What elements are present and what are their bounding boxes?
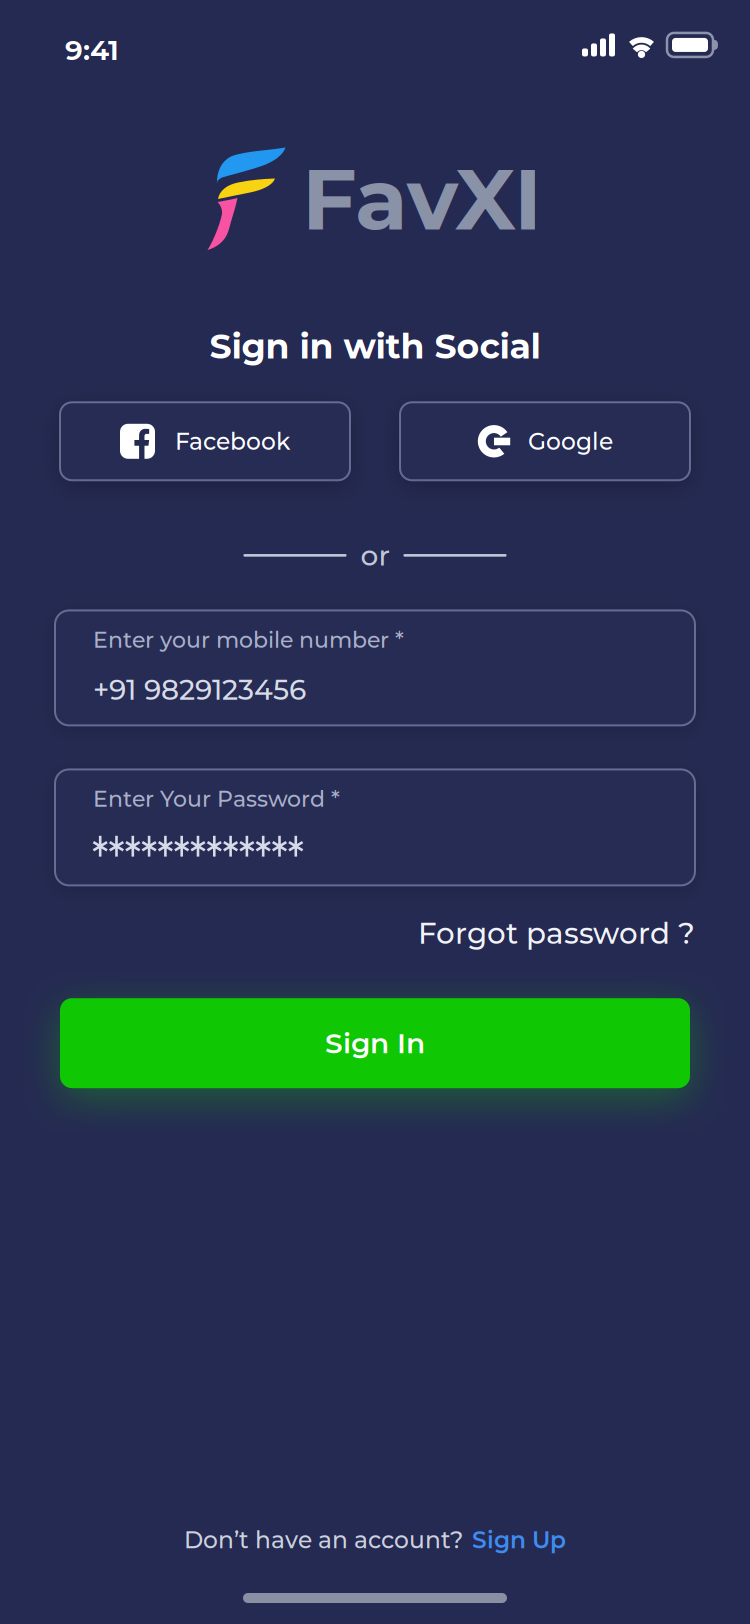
staticText: Don’t have an account? [184,1526,463,1554]
staticText: or [360,538,389,572]
staticText: Forgot password ? [418,915,695,951]
staticText: Sign Up [472,1526,566,1554]
staticText: 9:41 [65,33,119,67]
button[interactable]: Google [400,402,690,480]
staticText: Enter Your Password * [93,785,340,812]
button[interactable]: Forgot password ? [418,915,695,951]
button[interactable]: Sign Up [472,1526,566,1554]
staticText: Facebook [175,427,290,455]
button[interactable]: Enter your mobile number * [55,610,695,725]
staticText: Sign in with Social [209,325,540,367]
staticText: FavXI [302,147,542,251]
staticText: Enter your mobile number * [93,626,404,653]
staticText: +91 9829123456 [93,673,306,707]
staticText: Sign In [325,1026,425,1060]
button[interactable]: Enter Your Password * [55,769,695,885]
staticText: Google [528,427,613,455]
button[interactable]: Facebook [60,402,350,480]
button[interactable]: Sign In [60,998,690,1088]
